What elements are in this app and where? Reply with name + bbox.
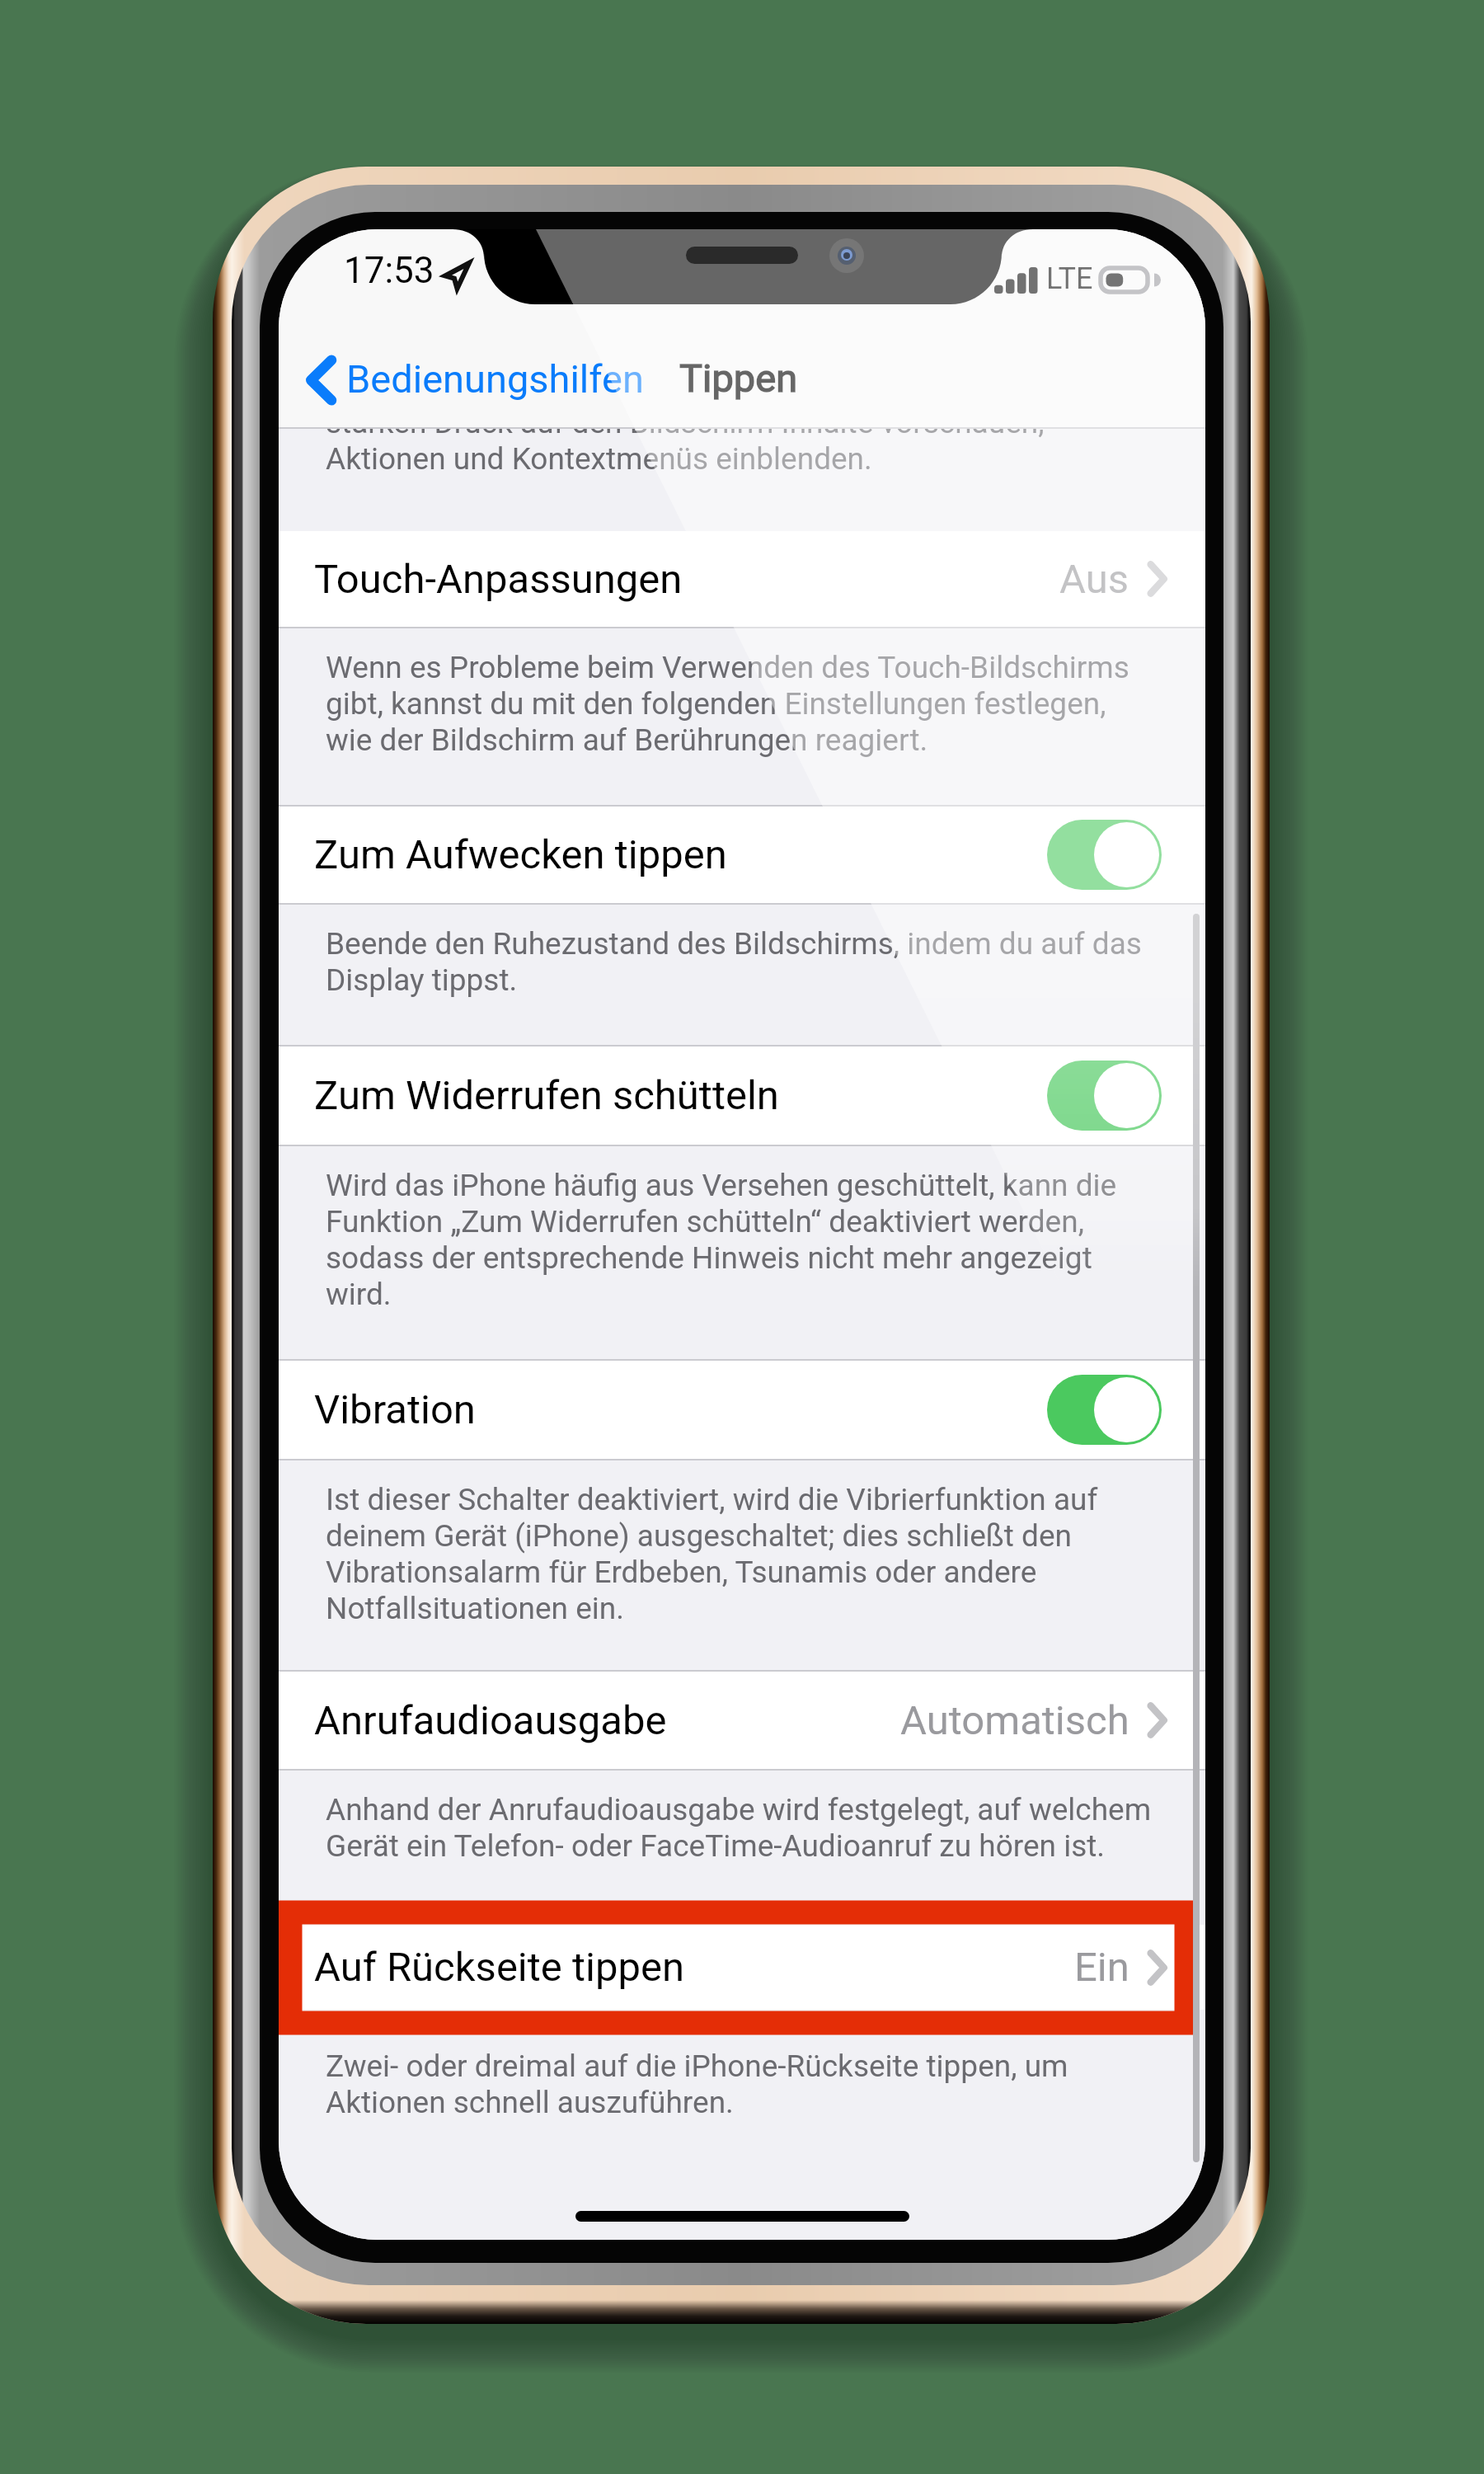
staticText: Auf Rückseite tippen: [314, 1944, 684, 1991]
button[interactable]: Zum Widerrufen schütteln: [279, 1047, 1205, 1145]
staticText: Anhand der Anrufaudioausgabe wird festge…: [326, 1792, 1155, 1864]
staticText: Anrufaudioausgabe: [314, 1697, 667, 1744]
button[interactable]: Touch-Anpassungen: [279, 531, 1205, 627]
staticText: Aus: [1059, 556, 1129, 603]
button[interactable]: Bedienungshilfen: [279, 353, 644, 407]
staticText: Wenn es Probleme beim Verwenden des Touc…: [326, 650, 1155, 758]
staticText: Zum Widerrufen schütteln: [314, 1072, 779, 1119]
staticText: starken Druck auf den Bildschirm Inhalte…: [326, 429, 1155, 477]
button[interactable]: Vibration: [279, 1361, 1205, 1459]
button[interactable]: Ein/Aus: [1047, 1375, 1162, 1445]
button[interactable]: Ein/Aus: [1047, 1061, 1162, 1131]
button[interactable]: Ein/Aus: [1047, 820, 1162, 890]
staticText: Touch-Anpassungen: [314, 556, 683, 603]
staticText: Tippen: [679, 355, 798, 401]
button[interactable]: Zum Aufwecken tippen: [279, 807, 1205, 903]
staticText: Bedienungshilfen: [346, 356, 644, 402]
staticText: Beende den Ruhezustand des Bildschirms, …: [326, 926, 1155, 998]
staticText: Ein: [1074, 1944, 1129, 1991]
staticText: Vibration: [314, 1386, 476, 1433]
button[interactable]: Auf Rückseite tippen: [279, 1925, 1205, 2010]
button[interactable]: Anrufaudioausgabe: [279, 1672, 1205, 1769]
staticText: LTE: [1046, 261, 1093, 296]
staticText: 17:53: [344, 249, 434, 292]
staticText: Wird das iPhone häufig aus Versehen gesc…: [326, 1168, 1155, 1312]
staticText: Zum Aufwecken tippen: [314, 831, 727, 878]
staticText: Automatisch: [900, 1697, 1129, 1744]
staticText: Ist dieser Schalter deaktiviert, wird di…: [326, 1482, 1155, 1626]
staticText: Zwei- oder dreimal auf die iPhone-Rückse…: [326, 2048, 1155, 2120]
